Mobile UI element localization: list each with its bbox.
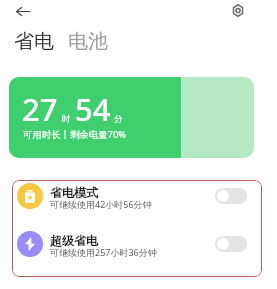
button[interactable]: 省电	[14, 29, 54, 54]
button[interactable]: 电池	[68, 29, 108, 54]
button[interactable]: Toggle 超级省电	[215, 236, 247, 252]
staticText: 分	[114, 114, 123, 125]
staticText: 54	[75, 88, 111, 130]
staticText: 电池	[68, 29, 108, 54]
staticText: 超级省电	[50, 233, 98, 248]
staticText: 可继续使用42小时56分钟	[50, 198, 152, 210]
button[interactable]: 超级省电	[12, 221, 262, 267]
staticText: 省电	[14, 29, 54, 54]
staticText: 可继续使用257小时36分钟	[50, 246, 157, 258]
staticText: 时	[62, 114, 71, 125]
staticText: 省电模式	[50, 185, 98, 200]
button[interactable]: Toggle 省电模式	[215, 188, 247, 204]
staticText: 可用时长丨剩余电量70%	[23, 128, 127, 141]
button[interactable]: Back	[14, 2, 32, 20]
staticText: 27	[22, 88, 58, 130]
button[interactable]: Settings	[228, 1, 247, 20]
button[interactable]: 省电模式	[12, 180, 262, 219]
button[interactable]: 27	[9, 77, 254, 158]
